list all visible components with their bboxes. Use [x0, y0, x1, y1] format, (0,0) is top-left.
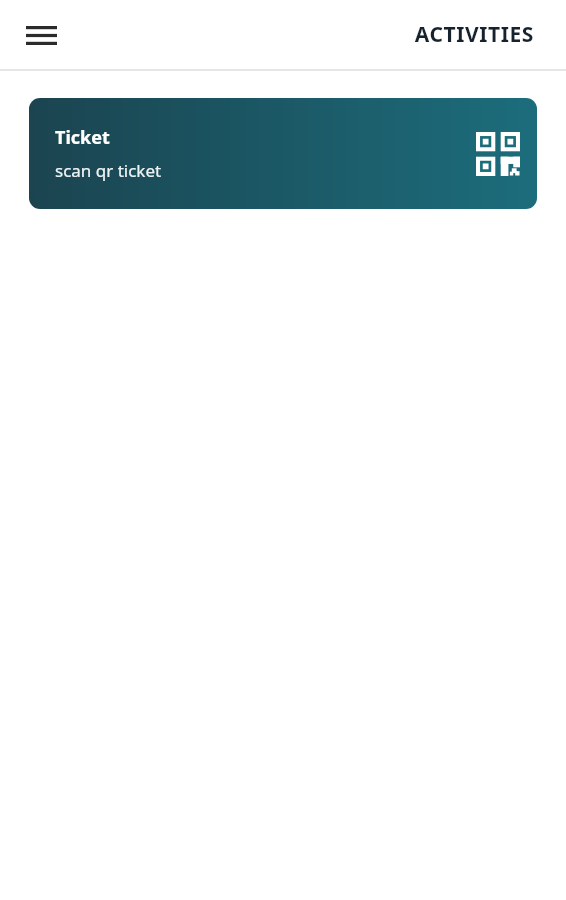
button[interactable]: Ticket — [29, 98, 537, 209]
staticText: ACTIVITIES — [414, 20, 534, 49]
button[interactable]: Open navigation menu — [18, 12, 64, 58]
staticText: Ticket — [55, 125, 110, 150]
staticText: scan qr ticket — [55, 159, 162, 182]
other: Scan QR ticket — [476, 132, 520, 176]
